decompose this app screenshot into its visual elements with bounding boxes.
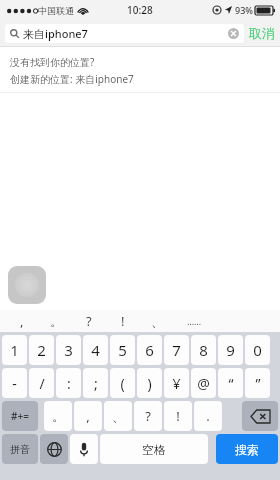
button[interactable]: : — [56, 368, 81, 398]
staticText: , — [86, 407, 90, 425]
staticText: #+= — [11, 409, 29, 423]
button[interactable]: @ — [191, 368, 216, 398]
button[interactable]: 。 — [44, 401, 72, 431]
button[interactable]: . — [194, 401, 222, 431]
button[interactable]: …… — [182, 310, 206, 332]
button[interactable]: ) — [137, 368, 162, 398]
button[interactable]: 6 — [137, 335, 162, 365]
button[interactable]: ; — [83, 368, 108, 398]
staticText: 8 — [199, 340, 208, 360]
staticText: - — [12, 374, 17, 393]
staticText: 1 — [10, 340, 19, 360]
staticText: ? — [86, 312, 92, 330]
button[interactable]: 没有找到你的位置? — [0, 55, 280, 86]
staticText: 中国联通 — [38, 5, 74, 16]
button[interactable]: 。 — [44, 310, 68, 332]
staticText: 拼音 — [10, 443, 30, 456]
staticText: 、 — [151, 313, 164, 329]
button[interactable]: ” — [245, 368, 270, 398]
button[interactable]: Switch keyboard — [40, 434, 68, 464]
staticText: @ — [197, 374, 210, 393]
staticText: ; — [94, 374, 98, 393]
staticText: 取消 — [249, 25, 275, 41]
button[interactable]: / — [29, 368, 54, 398]
staticText: / — [39, 374, 45, 393]
staticText: 、 — [112, 408, 125, 424]
staticText: ” — [255, 374, 261, 393]
button[interactable]: ! — [164, 401, 192, 431]
button[interactable]: , — [74, 401, 102, 431]
staticText: ? — [145, 407, 151, 425]
button[interactable]: 0 — [245, 335, 270, 365]
button[interactable]: 7 — [164, 335, 189, 365]
staticText: . — [206, 407, 210, 425]
button[interactable]: ¥ — [164, 368, 189, 398]
button[interactable]: ? — [134, 401, 162, 431]
staticText: …… — [187, 315, 202, 327]
button[interactable]: 2 — [29, 335, 54, 365]
button[interactable]: 5 — [110, 335, 135, 365]
staticText: 7 — [172, 340, 181, 360]
button[interactable]: Voice input — [70, 434, 98, 464]
button[interactable]: ( — [110, 368, 135, 398]
button[interactable]: 、 — [145, 310, 169, 332]
button[interactable]: 9 — [218, 335, 243, 365]
button[interactable]: 4 — [83, 335, 108, 365]
button[interactable]: ! — [111, 310, 135, 332]
staticText: 6 — [145, 340, 154, 360]
staticText: 2 — [37, 340, 46, 360]
staticText: ! — [176, 407, 180, 425]
staticText: 创建新的位置: 来自iphone7 — [10, 72, 134, 86]
button[interactable]: Backspace — [242, 401, 278, 431]
staticText: , — [20, 312, 24, 330]
button[interactable]: 拼音 — [2, 434, 38, 464]
button[interactable]: 8 — [191, 335, 216, 365]
staticText: 搜索 — [235, 442, 259, 457]
staticText: 5 — [118, 340, 127, 360]
staticText: 93% — [235, 4, 253, 16]
staticText: ¥ — [172, 374, 181, 393]
staticText: 。 — [52, 408, 65, 424]
button[interactable]: Clear text — [228, 28, 239, 39]
button[interactable]: , — [10, 310, 34, 332]
button[interactable]: “ — [218, 368, 243, 398]
button[interactable]: 空格 — [100, 434, 208, 464]
staticText: “ — [228, 374, 234, 393]
staticText: 来自iphone7 — [23, 26, 88, 41]
staticText: 10:28 — [127, 3, 153, 17]
button[interactable]: - — [2, 368, 27, 398]
staticText: : — [67, 374, 71, 393]
staticText: ! — [121, 312, 125, 330]
button[interactable]: 取消 — [249, 25, 275, 41]
button[interactable]: ? — [77, 310, 101, 332]
button[interactable]: 3 — [56, 335, 81, 365]
staticText: 9 — [226, 340, 235, 360]
staticText: ( — [120, 374, 125, 393]
button[interactable]: #+= — [2, 401, 38, 431]
staticText: 3 — [64, 340, 73, 360]
staticText: ) — [147, 374, 152, 393]
button[interactable]: 1 — [2, 335, 27, 365]
staticText: 。 — [50, 313, 63, 329]
button[interactable]: 来自iphone7 — [5, 24, 244, 43]
staticText: 0 — [253, 340, 262, 360]
button[interactable]: 搜索 — [216, 434, 278, 464]
button[interactable]: 、 — [104, 401, 132, 431]
staticText: 没有找到你的位置? — [10, 55, 95, 69]
staticText: 4 — [91, 340, 100, 360]
staticText: 空格 — [142, 442, 166, 457]
